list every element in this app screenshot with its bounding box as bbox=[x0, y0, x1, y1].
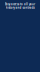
staticText: history and contracts bbox=[5, 6, 34, 9]
staticText: Easy access to all your bbox=[5, 2, 35, 6]
